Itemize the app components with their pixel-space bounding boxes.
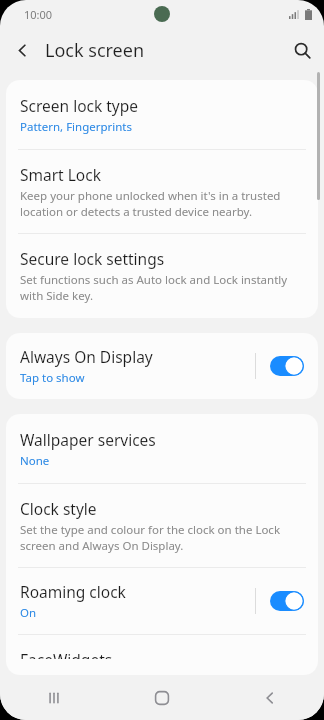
button[interactable]: Screen lock type [6, 80, 318, 149]
staticText: Set the type and colour for the clock on… [20, 522, 281, 553]
button[interactable]: FaceWidgets [6, 635, 318, 675]
staticText: Always On Display [20, 346, 153, 367]
button[interactable]: Roaming clock [268, 589, 306, 613]
button[interactable]: Back [216, 675, 324, 720]
staticText: Keep your phone unlocked when it's in a … [20, 188, 281, 219]
staticText: Wallpaper services [20, 429, 156, 450]
staticText: None [20, 453, 50, 469]
button[interactable]: Recents [0, 675, 108, 720]
button[interactable]: Home [108, 675, 216, 720]
staticText: On [20, 605, 37, 621]
button[interactable]: Always On Display [268, 354, 306, 378]
staticText: Smart Lock [20, 164, 101, 185]
button[interactable]: Clock style [6, 484, 318, 567]
button[interactable]: Always On Display [6, 333, 318, 399]
staticText: 10:00 [24, 7, 53, 22]
staticText: Secure lock settings [20, 248, 165, 269]
button[interactable]: Roaming clock [6, 568, 318, 634]
button[interactable]: Secure lock settings [6, 234, 318, 318]
staticText: Set functions such as Auto lock and Lock… [20, 272, 288, 303]
button[interactable]: Search [280, 28, 324, 72]
staticText: Pattern, Fingerprints [20, 119, 133, 135]
staticText: Clock style [20, 498, 97, 519]
button[interactable]: Smart Lock [6, 150, 318, 233]
button[interactable]: Back [0, 28, 44, 72]
staticText: Lock screen [45, 38, 145, 63]
staticText: Tap to show [20, 370, 85, 386]
button[interactable]: Wallpaper services [6, 414, 318, 483]
staticText: Roaming clock [20, 581, 126, 602]
staticText: Screen lock type [20, 95, 139, 116]
staticText: FaceWidgets [20, 649, 113, 659]
